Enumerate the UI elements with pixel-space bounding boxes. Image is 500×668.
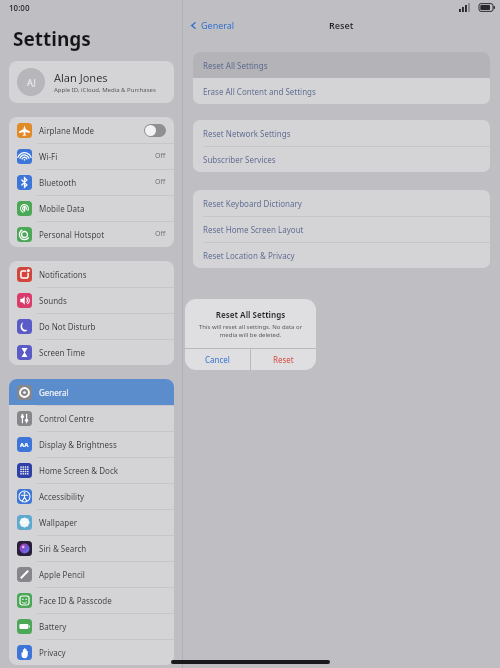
button[interactable]: Control Centre [9,405,174,431]
staticText: Airplane Mode [39,125,95,136]
button[interactable]: AJ [9,61,174,103]
button[interactable]: Reset Network Settings [193,120,490,146]
staticText: Accessibility [39,491,85,502]
staticText: Settings [13,26,91,52]
staticText: Bluetooth [39,177,77,188]
staticText: Subscriber Services [203,154,276,165]
staticText: Reset Keyboard Dictionary [203,198,302,209]
button[interactable]: Cancel [185,349,250,370]
button[interactable]: Wi-Fi [9,143,174,169]
button[interactable]: Sounds [9,287,174,313]
button[interactable]: Battery [9,613,174,639]
button[interactable]: Personal Hotspot [9,221,174,247]
staticText: Mobile Data [39,203,85,214]
staticText: Reset All Settings [203,60,268,71]
staticText: Face ID & Passcode [39,595,112,606]
staticText: Off [155,229,166,239]
button[interactable]: Screen Time [9,339,174,365]
staticText: Apple Pencil [39,569,85,580]
staticText: Battery [39,621,67,632]
button[interactable]: Reset Home Screen Layout [193,216,490,242]
button[interactable]: Notifications [9,261,174,287]
button[interactable]: Wallpaper [9,509,174,535]
button[interactable]: Mobile Data [9,195,174,221]
staticText: General [201,19,235,31]
staticText: AJ [27,76,36,88]
button[interactable]: Home Screen & Dock [9,457,174,483]
staticText: AA [20,441,29,449]
staticText: Off [155,177,166,187]
staticText: Reset [273,354,294,365]
button[interactable]: General [189,19,235,31]
staticText: Cancel [205,354,230,365]
button[interactable]: Reset [251,349,316,370]
staticText: Reset [329,19,354,31]
staticText: Notifications [39,269,87,280]
staticText: Privacy [39,647,66,658]
button[interactable]: Privacy [9,639,174,665]
button[interactable]: General [9,379,174,405]
staticText: Alan Jones [54,70,108,85]
button[interactable]: Bluetooth [9,169,174,195]
staticText: Wallpaper [39,517,78,528]
staticText: Reset All Settings [185,309,316,320]
staticText: Reset Network Settings [203,128,291,139]
staticText: Erase All Content and Settings [203,86,316,97]
button[interactable]: AA [9,431,174,457]
staticText: Home Screen & Dock [39,465,118,476]
staticText: Screen Time [39,347,85,358]
staticText: Control Centre [39,413,94,424]
staticText: Do Not Disturb [39,321,96,332]
staticText: Off [155,151,166,161]
staticText: Reset Home Screen Layout [203,224,304,235]
staticText: Reset Location & Privacy [203,250,295,261]
staticText: General [39,387,69,398]
button[interactable]: Subscriber Services [193,146,490,172]
button[interactable]: Reset All Settings [193,52,490,78]
staticText: Display & Brightness [39,439,117,450]
button[interactable]: Apple Pencil [9,561,174,587]
staticText: Apple ID, iCloud, Media & Purchases [54,86,156,94]
button[interactable]: Siri & Search [9,535,174,561]
button[interactable]: Erase All Content and Settings [193,78,490,104]
button[interactable]: Airplane Mode toggle [144,124,166,137]
staticText: Sounds [39,295,67,306]
staticText: Siri & Search [39,543,87,554]
button[interactable]: Airplane Mode [9,117,174,143]
button[interactable]: Face ID & Passcode [9,587,174,613]
button[interactable]: Accessibility [9,483,174,509]
staticText: 10:00 [9,2,30,13]
button[interactable]: Reset Keyboard Dictionary [193,190,490,216]
button[interactable]: Do Not Disturb [9,313,174,339]
staticText: This will reset all settings. No data or… [194,323,307,339]
button[interactable]: Reset Location & Privacy [193,242,490,268]
staticText: Wi-Fi [39,151,58,162]
staticText: Personal Hotspot [39,229,105,240]
